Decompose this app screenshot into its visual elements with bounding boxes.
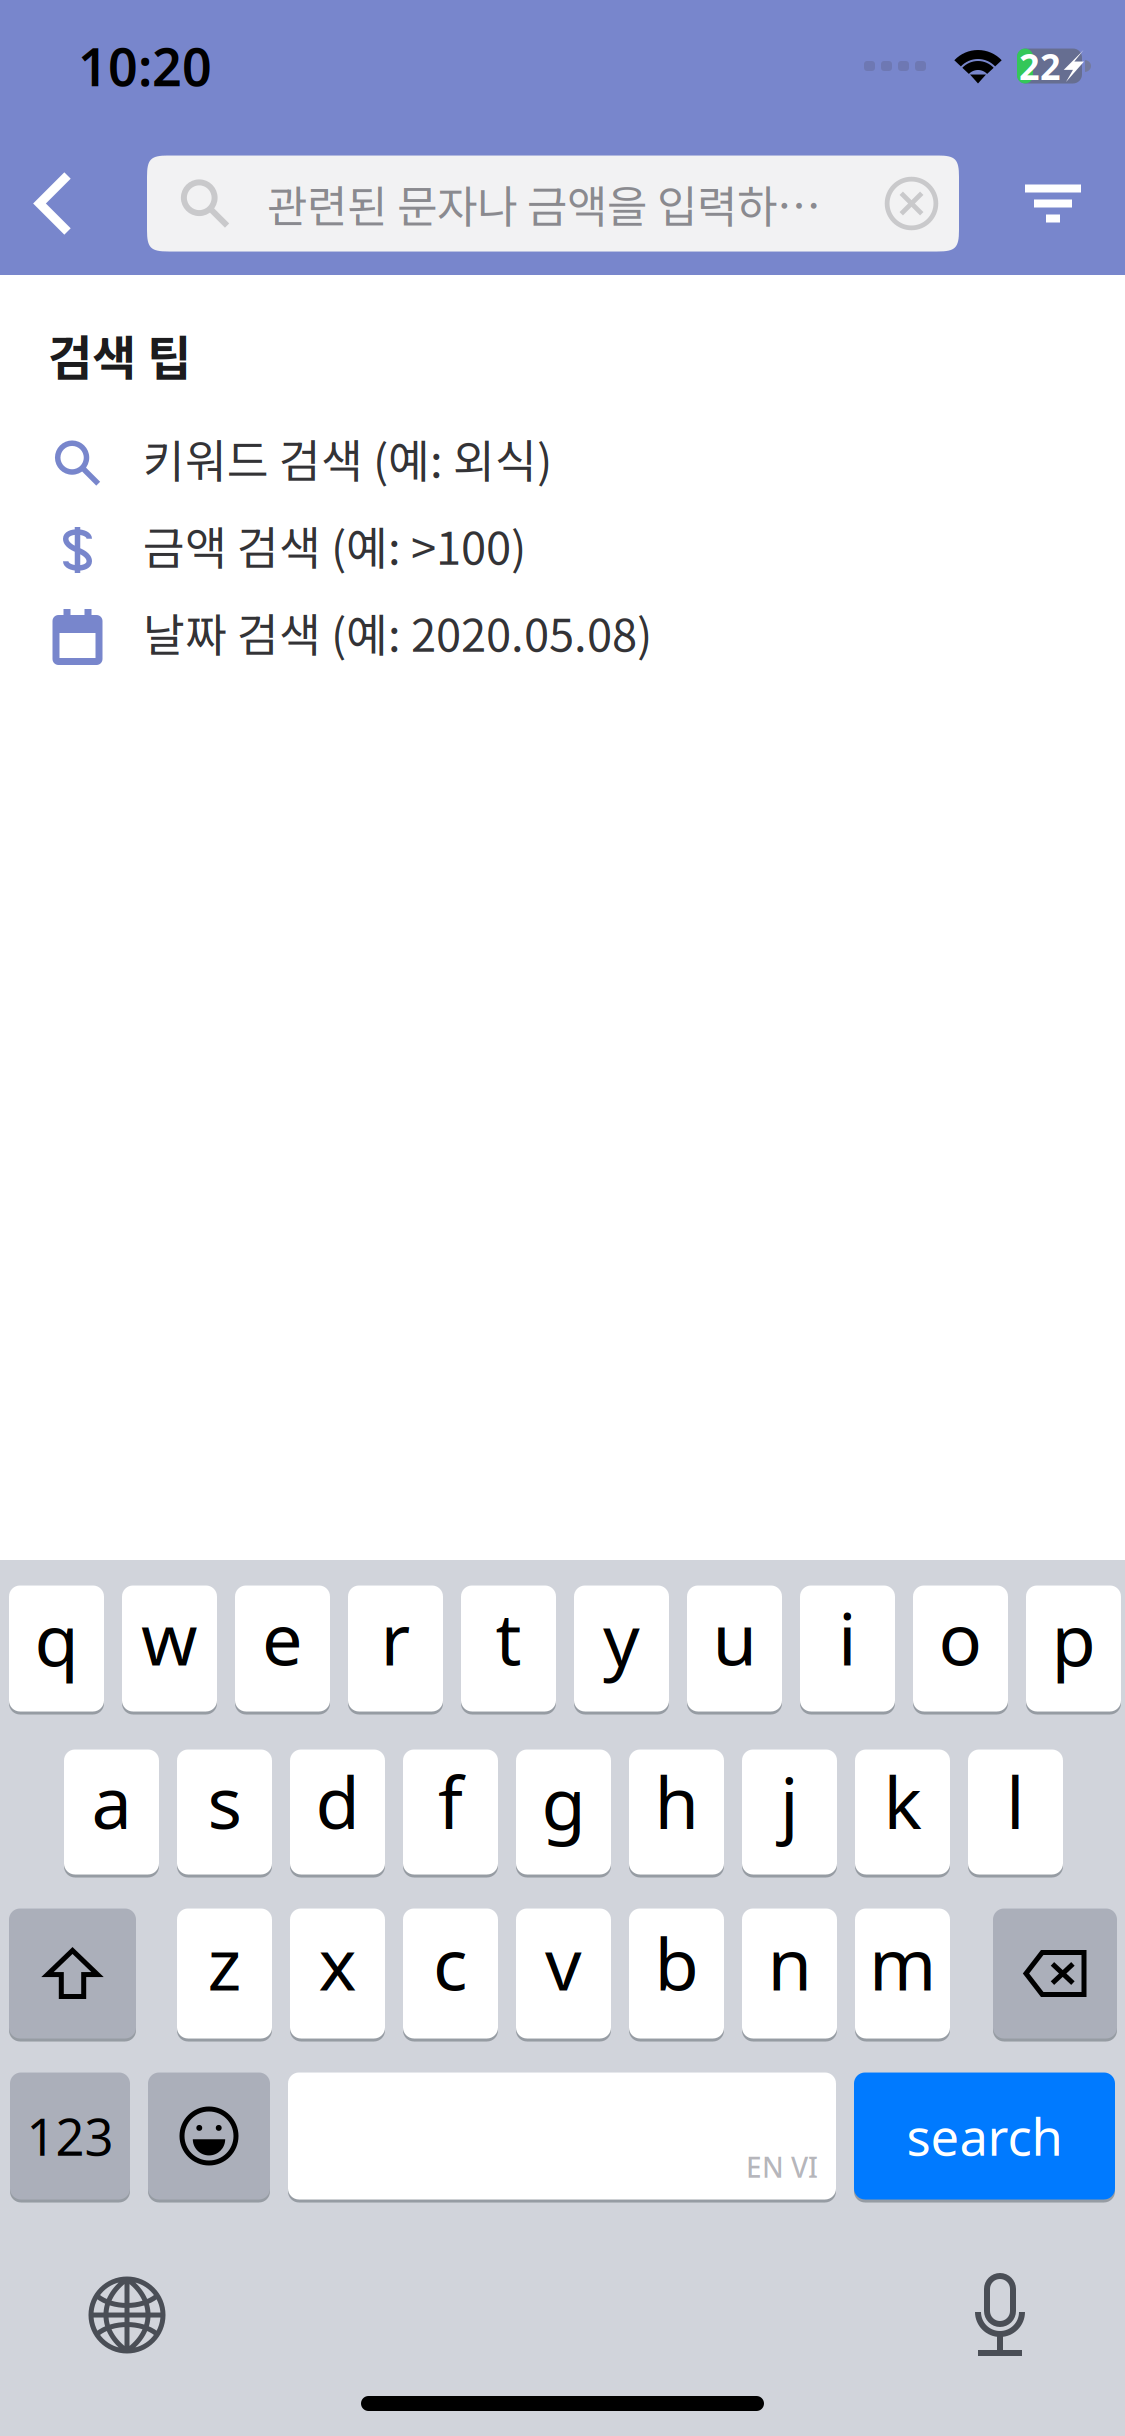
staticText: u (712, 1590, 756, 1685)
staticText: o (938, 1590, 982, 1685)
button[interactable]: Space (288, 2071, 836, 2201)
staticText: l (1006, 1753, 1025, 1849)
button[interactable]: i (800, 1584, 895, 1713)
button[interactable]: g (516, 1748, 611, 1876)
button[interactable]: Dictate (969, 2272, 1031, 2358)
staticText: x (318, 1915, 356, 2010)
staticText: h (654, 1753, 698, 1849)
button[interactable]: Back (0, 153, 107, 253)
button[interactable]: n (742, 1907, 837, 2040)
staticText: y (603, 1591, 640, 1686)
button[interactable]: t (461, 1584, 556, 1713)
staticText: w (141, 1590, 198, 1685)
button[interactable]: b (629, 1907, 724, 2040)
staticText: g (541, 1754, 585, 1850)
staticText: 관련된 문자나 금액을 입력하… (267, 172, 821, 235)
button[interactable]: v (516, 1907, 611, 2040)
staticText: q (34, 1591, 78, 1686)
staticText: e (262, 1590, 303, 1685)
staticText: r (380, 1590, 410, 1685)
button[interactable]: Clear search (885, 177, 959, 230)
button[interactable]: Shift (9, 1907, 136, 2040)
button[interactable]: q (9, 1584, 104, 1713)
staticText: n (767, 1915, 811, 2010)
button[interactable]: f (403, 1748, 498, 1876)
staticText: 10:20 (78, 31, 212, 101)
staticText: 22 (1019, 42, 1061, 90)
button[interactable]: y (574, 1584, 669, 1713)
button[interactable]: d (290, 1748, 385, 1876)
button[interactable]: r (348, 1584, 443, 1713)
button[interactable]: s (177, 1748, 272, 1876)
button[interactable]: k (855, 1748, 950, 1876)
staticText: s (207, 1753, 241, 1849)
staticText: 날짜 검색 (예: 2020.05.08) (143, 599, 652, 665)
button[interactable]: x (290, 1907, 385, 2040)
button[interactable]: m (855, 1907, 950, 2040)
button[interactable]: z (177, 1907, 272, 2040)
button[interactable]: a (64, 1748, 159, 1876)
staticText: t (495, 1590, 521, 1685)
button[interactable]: Delete (993, 1907, 1117, 2040)
button[interactable]: p (1026, 1584, 1121, 1713)
staticText: 키워드 검색 (예: 외식) (143, 425, 552, 491)
staticText: d (315, 1753, 359, 1849)
staticText: m (869, 1915, 936, 2010)
button[interactable]: j (742, 1748, 837, 1876)
staticText: z (207, 1915, 241, 2010)
button[interactable]: Next keyboard (88, 2276, 166, 2354)
staticText: search (906, 2102, 1062, 2170)
button[interactable]: o (913, 1584, 1008, 1713)
button[interactable]: Emoji (148, 2071, 270, 2201)
staticText: b (654, 1915, 698, 2010)
staticText: EN VI (746, 2148, 818, 2185)
staticText: k (883, 1753, 921, 1849)
button[interactable]: c (403, 1907, 498, 2040)
staticText: 검색 팁 (48, 320, 191, 389)
button[interactable]: w (122, 1584, 217, 1713)
staticText: f (438, 1753, 463, 1849)
staticText: c (433, 1915, 468, 2010)
button[interactable]: e (235, 1584, 330, 1713)
button[interactable]: Numbers (10, 2071, 130, 2201)
button[interactable]: l (968, 1748, 1063, 1876)
button[interactable]: Filter (1003, 153, 1103, 253)
staticText: i (838, 1590, 857, 1685)
staticText: j (780, 1754, 799, 1850)
button[interactable]: h (629, 1748, 724, 1876)
button[interactable]: Search (854, 2071, 1115, 2201)
staticText: 123 (26, 2102, 113, 2170)
button[interactable]: u (687, 1584, 782, 1713)
staticText: v (545, 1915, 582, 2010)
staticText: p (1051, 1591, 1095, 1686)
staticText: a (91, 1753, 131, 1849)
staticText: 금액 검색 (예: >100) (143, 512, 526, 578)
